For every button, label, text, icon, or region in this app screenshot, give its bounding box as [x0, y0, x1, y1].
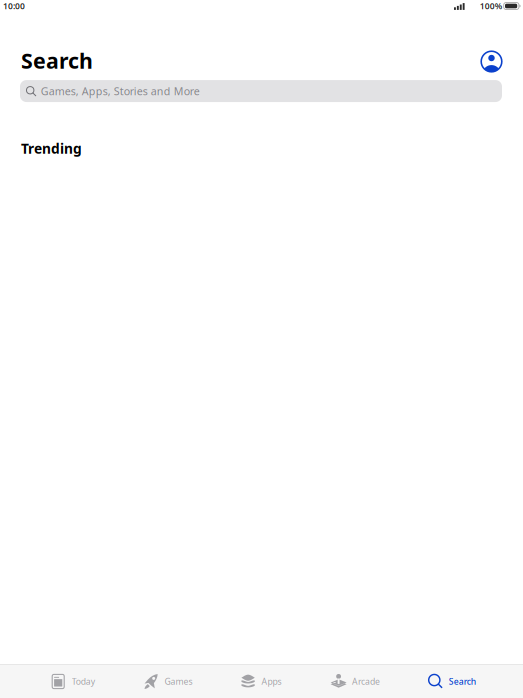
button[interactable]: Search [429, 665, 476, 698]
button[interactable]: Apps [241, 665, 281, 698]
button[interactable]: Arcade [330, 665, 380, 698]
staticText: Trending [21, 139, 82, 158]
staticText: Games [164, 676, 192, 687]
staticText: 10:00 [3, 0, 25, 12]
button[interactable]: Today [52, 665, 95, 698]
button[interactable]: Games [143, 665, 192, 698]
staticText: Arcade [352, 676, 380, 687]
staticText: Search [449, 676, 476, 687]
staticText: Search [21, 46, 93, 75]
button[interactable]: Account [481, 51, 502, 72]
staticText: Today [72, 676, 95, 687]
button[interactable]: Search field [20, 80, 502, 102]
staticText: Games, Apps, Stories and More [41, 84, 200, 98]
staticText: Apps [261, 676, 281, 687]
staticText: 100% [480, 0, 502, 12]
